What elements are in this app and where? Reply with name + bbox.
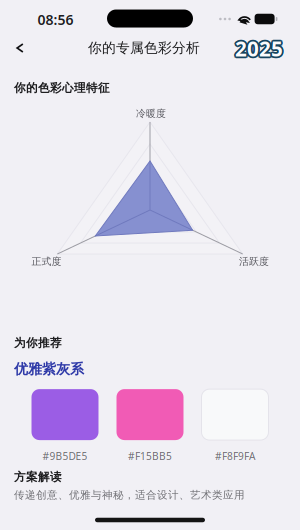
staticText: 2025 — [234, 33, 282, 61]
staticText: 方案解读 — [14, 470, 62, 484]
staticText: 2025 — [235, 34, 283, 62]
staticText: #F8F9FA — [215, 449, 255, 463]
staticText: 冷暖度 — [136, 107, 166, 120]
staticText: 优雅紫灰系 — [14, 360, 84, 378]
staticText: 传递创意、优雅与神秘，适合设计、艺术类应用 — [14, 488, 245, 502]
button[interactable]: 2025 — [232, 31, 286, 65]
staticText: 活跃度 — [239, 255, 269, 268]
button[interactable]: #F15BB5 — [116, 389, 183, 463]
button[interactable]: Back — [5, 33, 35, 63]
staticText: 2025 — [234, 36, 282, 64]
staticText: 为你推荐 — [14, 336, 62, 350]
staticText: 2025 — [236, 36, 284, 64]
staticText: #9B5DE5 — [42, 449, 87, 463]
staticText: 你的色彩心理特征 — [14, 81, 110, 95]
staticText: 2025 — [233, 34, 281, 62]
staticText: 08:56 — [37, 10, 73, 29]
staticText: 正式度 — [31, 255, 61, 268]
button[interactable]: #9B5DE5 — [31, 389, 98, 463]
staticText: 2025 — [235, 33, 283, 61]
button[interactable]: #F8F9FA — [201, 389, 268, 463]
staticText: 2025 — [235, 36, 283, 64]
staticText: 2025 — [236, 33, 284, 61]
staticText: #F15BB5 — [128, 449, 172, 463]
staticText: 2025 — [237, 34, 285, 62]
staticText: 你的专属色彩分析 — [88, 39, 200, 57]
